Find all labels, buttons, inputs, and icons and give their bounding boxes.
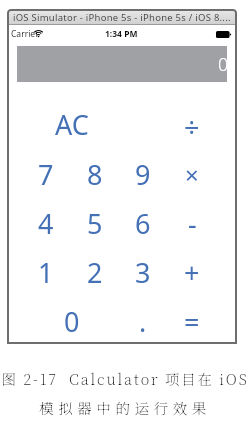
staticText: 4	[38, 205, 54, 242]
button[interactable]: 7	[23, 155, 69, 193]
staticText: +	[184, 254, 200, 291]
staticText: 1	[38, 254, 54, 291]
button[interactable]: 2	[72, 253, 118, 291]
staticText: 0	[218, 52, 229, 77]
button[interactable]: 4	[23, 204, 69, 242]
staticText: =	[184, 303, 200, 340]
staticText: ÷	[184, 108, 200, 145]
staticText: 模拟器中的运行效果	[39, 397, 211, 418]
staticText: 7	[38, 156, 54, 193]
staticText: 5	[87, 205, 103, 242]
staticText: iOS Simulator - iPhone 5s - iPhone 5s / …	[13, 11, 231, 24]
button[interactable]: 1	[23, 253, 69, 291]
button[interactable]: 3	[120, 253, 166, 291]
staticText: 9	[135, 156, 151, 193]
button[interactable]: -	[169, 204, 215, 242]
button[interactable]: =	[169, 302, 215, 340]
staticText: 0	[64, 303, 80, 340]
staticText: .	[139, 303, 147, 340]
button[interactable]: ÷	[169, 107, 215, 145]
button[interactable]: 8	[72, 155, 118, 193]
button[interactable]: 9	[120, 155, 166, 193]
button[interactable]: +	[169, 253, 215, 291]
staticText: 3	[135, 254, 151, 291]
staticText: 1:34 PM	[105, 28, 138, 40]
staticText: AC	[55, 106, 89, 143]
staticText: 图 2-17 Calculator 项目在 iOS	[1, 368, 249, 389]
button[interactable]: .	[120, 302, 166, 340]
staticText: 6	[135, 205, 151, 242]
staticText: 8	[87, 156, 103, 193]
staticText: ×	[185, 158, 199, 191]
button[interactable]: AC	[49, 105, 95, 143]
button[interactable]: ×	[169, 155, 215, 193]
staticText: -	[188, 205, 197, 242]
button[interactable]: 6	[120, 204, 166, 242]
button[interactable]: 5	[72, 204, 118, 242]
staticText: 2	[87, 254, 103, 291]
button[interactable]: 0	[17, 46, 227, 82]
button[interactable]: 0	[49, 302, 95, 340]
staticText: Carrier	[11, 28, 39, 40]
